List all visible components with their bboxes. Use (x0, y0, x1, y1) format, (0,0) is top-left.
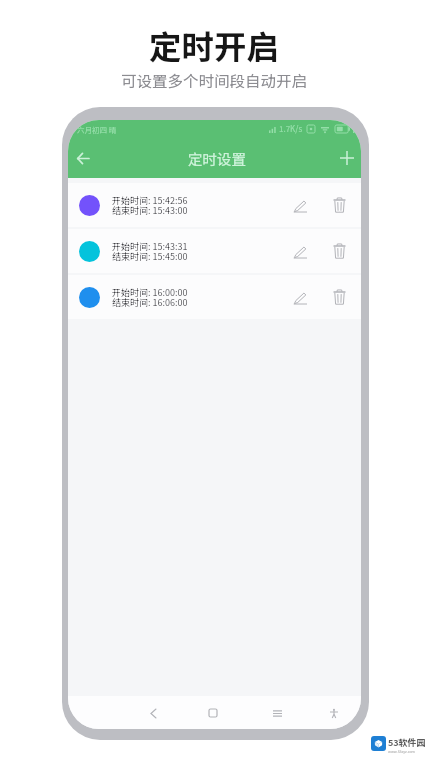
staticText: 可设置多个时间段自动开启 (121, 69, 308, 91)
staticText: 开始时间: 16:00:00 (112, 286, 188, 299)
button[interactable]: Edit (288, 285, 312, 309)
staticText: 结束时间: 15:45:00 (112, 250, 188, 263)
button[interactable]: Delete (327, 285, 351, 309)
button[interactable]: Add (334, 145, 360, 171)
button[interactable]: Accessibility (326, 705, 342, 721)
button[interactable]: 开始时间: 16:00:00 (68, 275, 361, 319)
button[interactable]: Back (70, 145, 96, 171)
button[interactable]: Delete (327, 239, 351, 263)
button[interactable]: Home (205, 705, 221, 721)
staticText: www.53xyz.com (388, 749, 415, 754)
staticText: 开始时间: 15:42:56 (112, 194, 188, 207)
button[interactable]: Delete (327, 193, 351, 217)
staticText: 结束时间: 15:43:00 (112, 204, 188, 217)
staticText: 定时开启 (149, 21, 280, 68)
button[interactable]: 开始时间: 15:42:56 (68, 183, 361, 227)
staticText: 六月初四 晴 (77, 124, 117, 135)
staticText: 53软件园 (388, 736, 426, 749)
button[interactable]: 开始时间: 15:43:31 (68, 229, 361, 273)
staticText: 定时设置 (188, 148, 246, 169)
button[interactable]: Edit (288, 193, 312, 217)
staticText: 1.7K/s (279, 123, 303, 135)
staticText: 结束时间: 16:06:00 (112, 296, 188, 309)
staticText: 开始时间: 15:43:31 (112, 240, 188, 253)
button[interactable]: Edit (288, 239, 312, 263)
button[interactable]: Recents (269, 705, 285, 721)
button[interactable]: Back (145, 705, 161, 721)
